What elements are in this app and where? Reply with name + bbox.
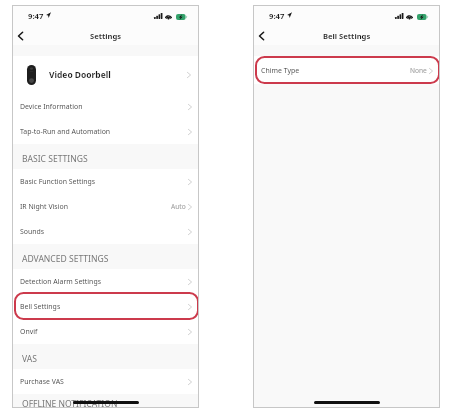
button[interactable]: Onvif [12,319,199,344]
staticText: Bell Settings [20,302,61,311]
staticText: Video Doorbell [49,69,111,81]
button[interactable]: Detection Alarm Settings [12,269,199,294]
staticText: BASIC SETTINGS [22,153,88,165]
button[interactable]: Video Doorbell [12,56,199,94]
button[interactable]: Purchase VAS [12,369,199,394]
staticText: OFFLINE NOTIFICATION [22,398,118,408]
staticText: Tap-to-Run and Automation [20,127,111,136]
staticText: VAS [22,353,37,365]
button[interactable]: Chime Type [253,56,440,84]
button[interactable]: Sounds [12,219,199,244]
staticText: Device Information [20,102,83,111]
staticText: Sounds [20,227,45,236]
staticText: IR Night Vision [20,202,68,211]
staticText: Settings [90,31,122,41]
button[interactable]: Back [253,27,270,44]
staticText: Onvif [20,327,38,336]
staticText: Basic Function Settings [20,177,96,186]
button[interactable]: Bell Settings [12,294,199,319]
staticText: Purchase VAS [20,377,64,386]
staticText: 9:47 [28,11,44,21]
staticText: Auto [171,202,186,211]
staticText: 9:47 [269,11,285,21]
staticText: ADVANCED SETTINGS [22,253,109,265]
staticText: Detection Alarm Settings [20,277,101,286]
button[interactable]: Basic Function Settings [12,169,199,194]
button[interactable]: Device Information [12,94,199,119]
button[interactable]: Tap-to-Run and Automation [12,119,199,144]
button[interactable]: Back [12,27,29,44]
staticText: Bell Settings [323,31,371,41]
staticText: None [410,66,427,75]
button[interactable]: IR Night Vision [12,194,199,219]
staticText: Chime Type [261,66,300,75]
